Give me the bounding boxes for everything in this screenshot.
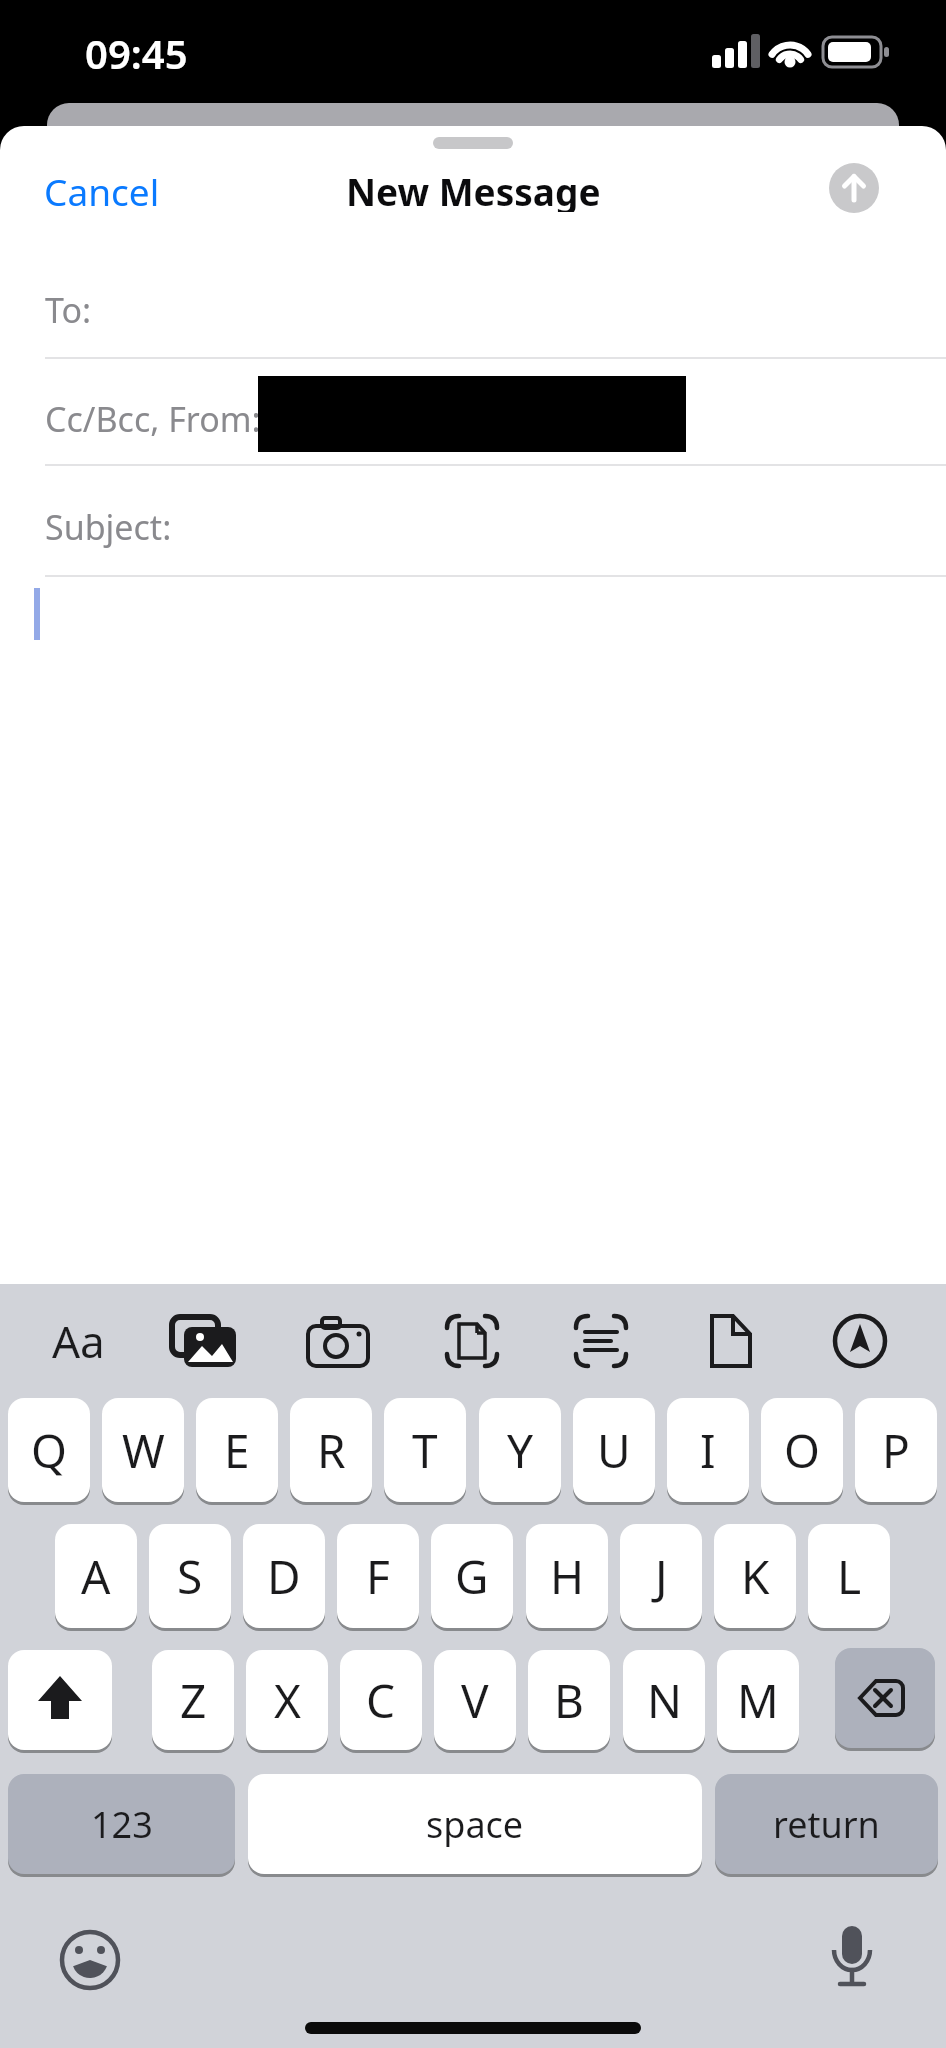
staticText: To: [45, 287, 92, 333]
button[interactable]: H [526, 1524, 608, 1628]
button[interactable]: To: [0, 240, 946, 358]
button[interactable]: F [337, 1524, 419, 1628]
staticText: J [655, 1545, 668, 1608]
staticText: Cancel [44, 166, 160, 212]
button[interactable]: J [620, 1524, 702, 1628]
button[interactable]: C [340, 1650, 422, 1750]
staticText: L [837, 1545, 862, 1608]
button[interactable]: N [623, 1650, 705, 1750]
button[interactable]: Subject: [0, 466, 946, 576]
staticText: Subject: [45, 504, 172, 550]
button[interactable]: O [761, 1398, 843, 1502]
button[interactable]: A [55, 1524, 137, 1628]
staticText: 123 [91, 1800, 153, 1849]
staticText: S [177, 1545, 203, 1608]
staticText: N [647, 1669, 682, 1732]
staticText: T [412, 1419, 438, 1482]
staticText: Aa [52, 1311, 105, 1371]
staticText: New Message [346, 166, 601, 212]
staticText: space [426, 1800, 524, 1849]
button[interactable]: X [246, 1650, 328, 1750]
button[interactable]: return [715, 1774, 938, 1874]
staticText: D [267, 1545, 301, 1608]
button[interactable]: G [431, 1524, 513, 1628]
button[interactable]: D [243, 1524, 325, 1628]
button[interactable]: 123 [8, 1774, 235, 1874]
button[interactable] [835, 1648, 935, 1748]
button[interactable]: M [717, 1650, 799, 1750]
staticText: Z [180, 1669, 207, 1732]
staticText: Y [507, 1419, 534, 1482]
button[interactable]: V [434, 1650, 516, 1750]
staticText: V [461, 1669, 489, 1732]
button[interactable]: Aa [30, 1308, 126, 1374]
button[interactable]: Cancel [44, 166, 160, 212]
button[interactable]: Q [8, 1398, 90, 1502]
button[interactable]: space [248, 1774, 702, 1874]
button[interactable]: T [384, 1398, 466, 1502]
button[interactable]: U [573, 1398, 655, 1502]
button[interactable]: P [855, 1398, 937, 1502]
staticText: M [737, 1669, 779, 1732]
button[interactable]: W [102, 1398, 184, 1502]
button[interactable]: L [808, 1524, 890, 1628]
staticText: O [784, 1419, 820, 1482]
button[interactable] [8, 1650, 112, 1750]
staticText: C [366, 1669, 396, 1732]
button[interactable]: I [667, 1398, 749, 1502]
button[interactable]: E [196, 1398, 278, 1502]
staticText: return [773, 1800, 880, 1849]
staticText: B [554, 1669, 584, 1732]
staticText: X [274, 1669, 301, 1732]
button[interactable]: Cc/Bcc, From: [0, 359, 946, 465]
staticText: K [741, 1545, 770, 1608]
staticText: H [550, 1545, 585, 1608]
button[interactable]: S [149, 1524, 231, 1628]
staticText: R [317, 1419, 346, 1482]
staticText: 09:45 [85, 26, 188, 80]
staticText: P [882, 1419, 910, 1482]
staticText: I [700, 1419, 716, 1482]
button[interactable]: K [714, 1524, 796, 1628]
staticText: E [224, 1419, 250, 1482]
staticText: W [122, 1419, 165, 1482]
staticText: U [597, 1419, 631, 1482]
staticText: F [366, 1545, 390, 1608]
staticText: Cc/Bcc, From: [45, 396, 261, 442]
button[interactable]: R [290, 1398, 372, 1502]
staticText: Q [31, 1419, 67, 1482]
button[interactable]: B [528, 1650, 610, 1750]
staticText: G [455, 1545, 489, 1608]
button[interactable] [829, 163, 879, 213]
button[interactable]: Z [152, 1650, 234, 1750]
staticText: A [81, 1545, 111, 1608]
button[interactable]: Y [479, 1398, 561, 1502]
